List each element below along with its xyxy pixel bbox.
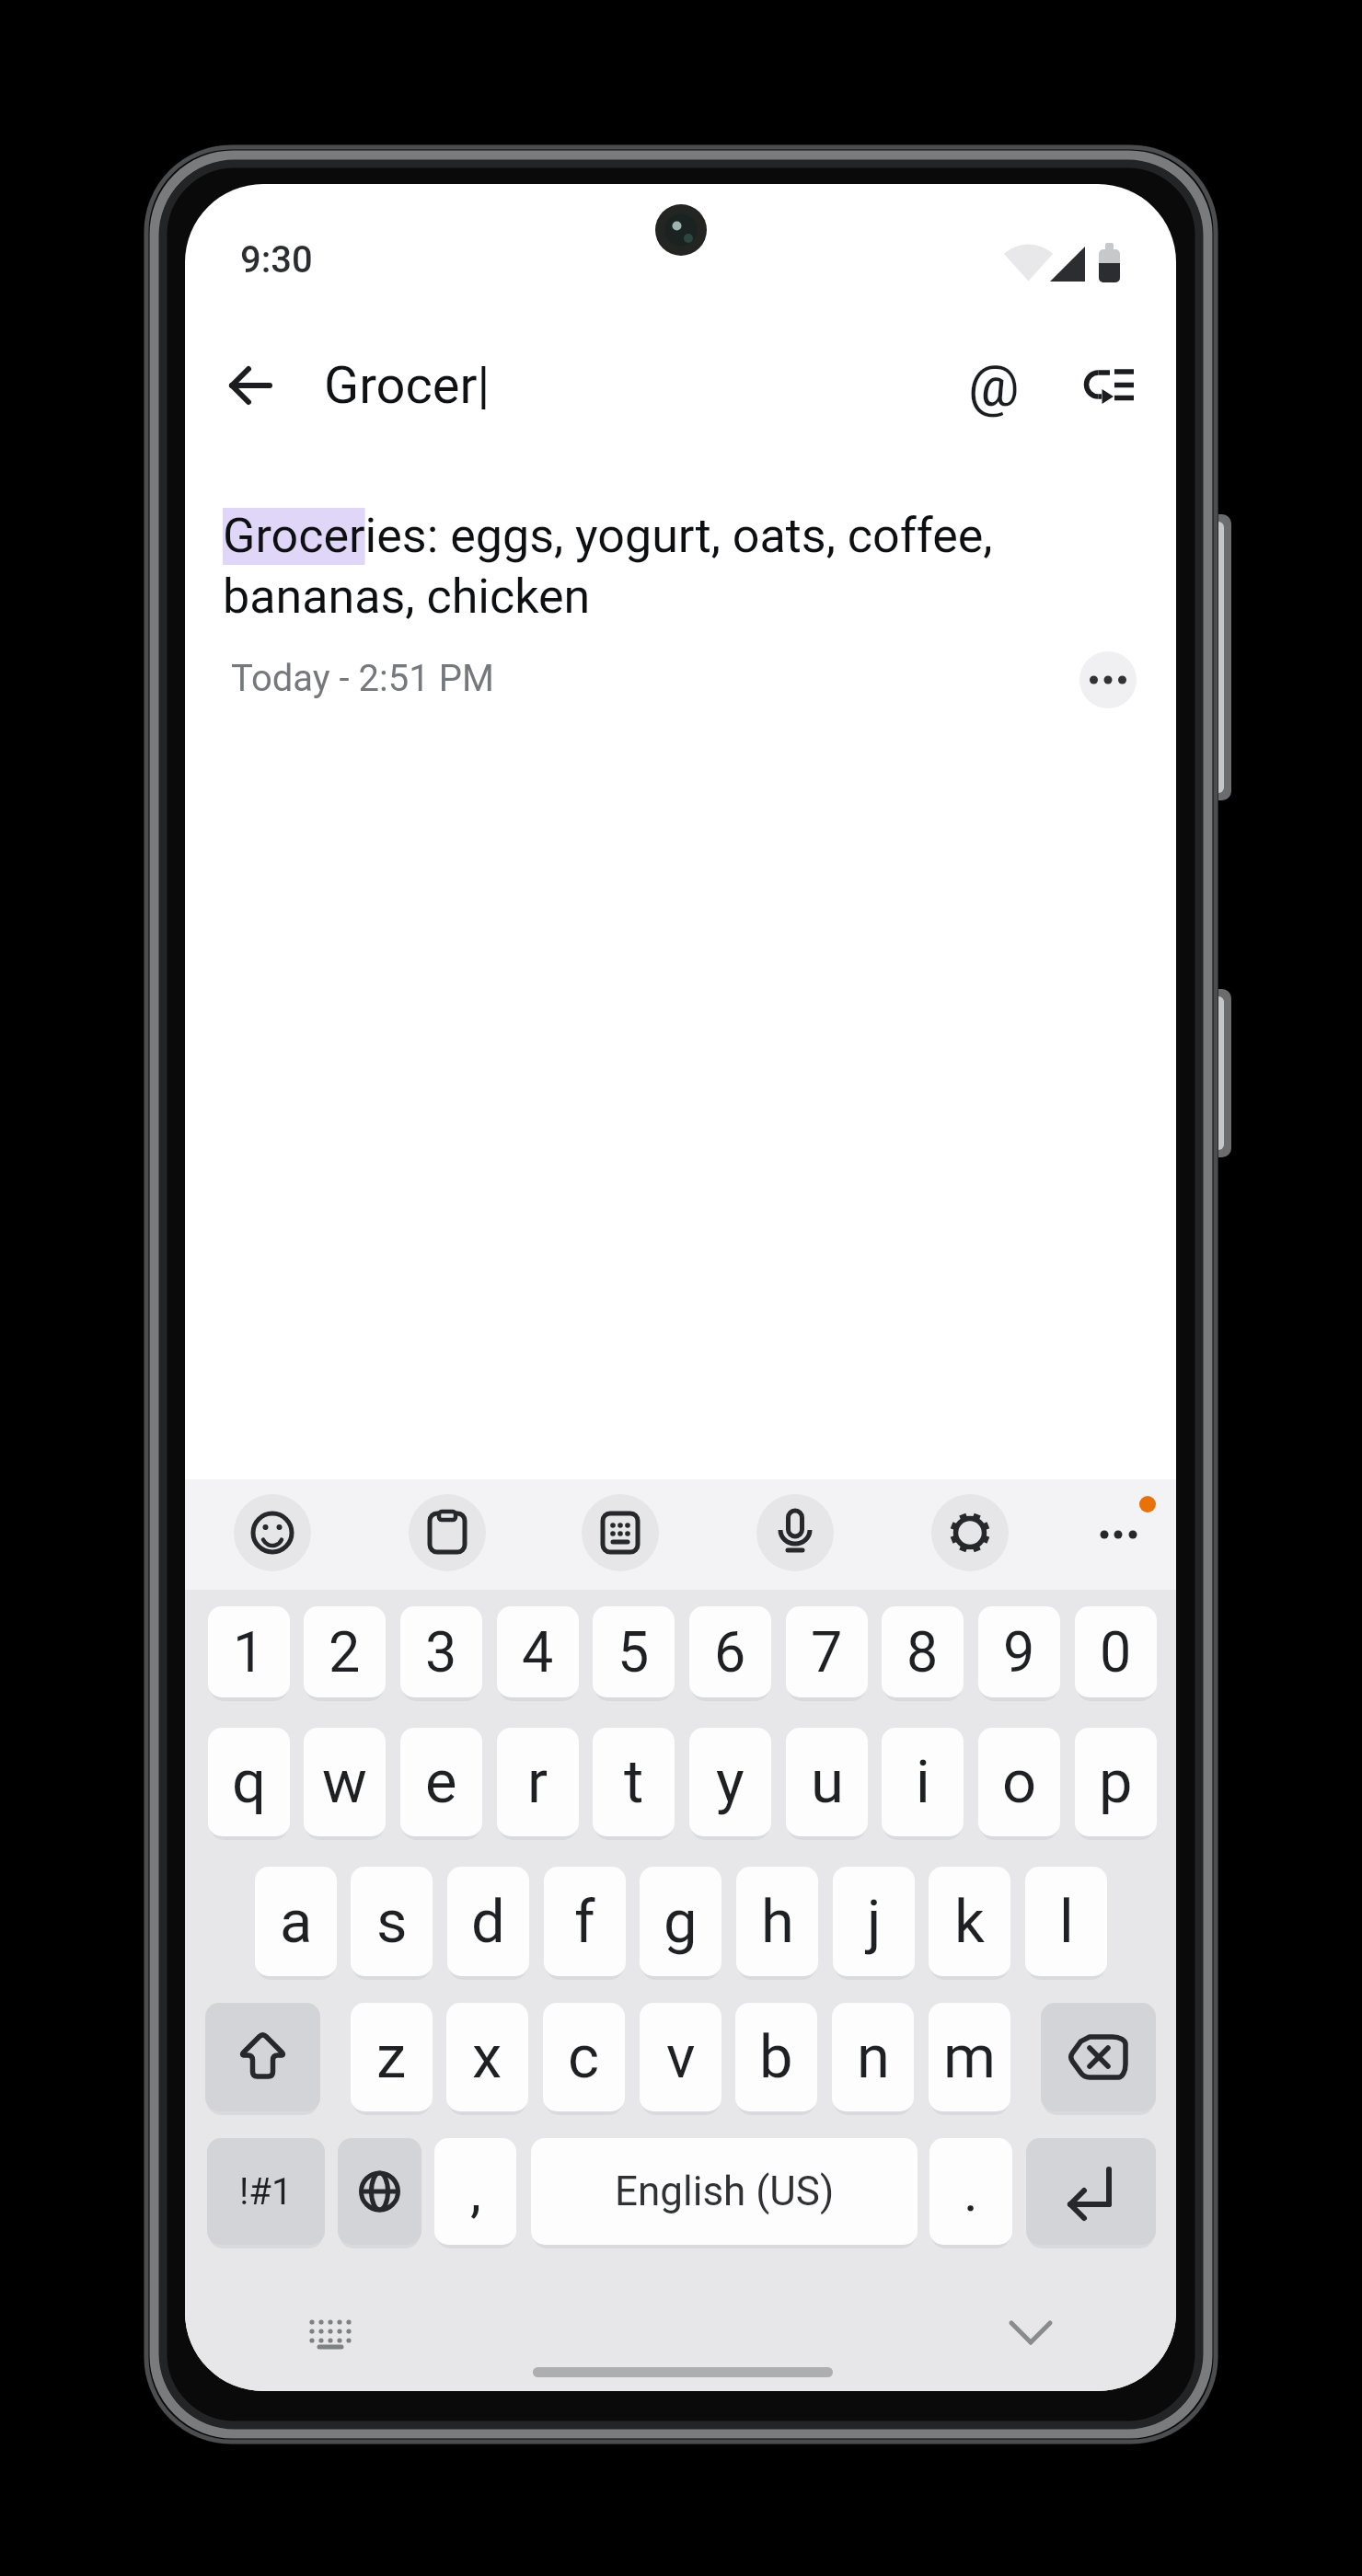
staticText: s [376,1887,408,1957]
button[interactable]: m [929,2003,1010,2111]
button[interactable] [1041,2003,1156,2111]
button[interactable]: 3 [400,1606,482,1697]
button[interactable]: s [351,1867,433,1976]
button[interactable]: 6 [689,1606,771,1697]
button[interactable]: k [929,1867,1010,1976]
staticText: w [322,1747,367,1817]
staticText: c [568,2022,600,2092]
staticText: n [857,2022,890,2092]
staticText: 9 [1003,1619,1035,1685]
button[interactable] [338,2138,421,2245]
staticText: m [943,2022,997,2092]
button[interactable] [409,1494,486,1571]
staticText: 8 [906,1619,939,1685]
staticText: !#1 [239,2170,293,2214]
staticText: k [954,1887,985,1957]
staticText: z [376,2022,407,2092]
button[interactable] [582,1494,659,1571]
staticText: g [664,1887,698,1957]
button[interactable]: n [832,2003,914,2111]
staticText: Today - 2:51 PM [231,657,494,700]
staticText: o [1002,1747,1037,1817]
staticText: 9:30 [240,238,313,282]
button[interactable]: i [882,1728,964,1836]
button[interactable] [1079,651,1137,708]
button[interactable]: 1 [208,1606,290,1697]
button[interactable]: , [434,2138,516,2245]
button[interactable]: y [689,1728,771,1836]
button[interactable]: a [255,1867,337,1976]
staticText: v [666,2022,696,2092]
button[interactable]: q [208,1728,290,1836]
staticText: y [716,1747,744,1817]
button[interactable] [205,2003,320,2111]
staticText: p [1099,1747,1133,1817]
button[interactable]: e [400,1728,482,1836]
staticText: h [761,1887,794,1957]
staticText: , [470,2159,481,2224]
staticText: Groceries: eggs, yogurt, oats, coffee, b… [223,508,993,625]
button[interactable] [1082,1509,1147,1560]
staticText: j [867,1887,882,1957]
staticText: 2 [329,1619,361,1685]
staticText: 5 [618,1619,650,1685]
button[interactable]: z [351,2003,433,2111]
staticText: 6 [714,1619,746,1685]
staticText: r [527,1747,548,1817]
button[interactable]: b [735,2003,817,2111]
button[interactable]: l [1025,1867,1107,1976]
staticText: 0 [1100,1619,1132,1685]
staticText: i [916,1747,930,1817]
staticText: x [472,2022,502,2092]
button[interactable] [931,1494,1009,1571]
button[interactable]: c [543,2003,625,2111]
staticText: 3 [425,1619,457,1685]
button[interactable]: x [446,2003,528,2111]
staticText: u [811,1747,844,1817]
button[interactable]: 8 [882,1606,964,1697]
staticText: d [471,1887,505,1957]
button[interactable] [234,1494,311,1571]
button[interactable]: 2 [304,1606,386,1697]
button[interactable] [533,2367,833,2377]
staticText: 4 [522,1619,554,1685]
button[interactable]: h [736,1867,818,1976]
staticText: Grocer| [324,355,491,416]
button[interactable]: 7 [786,1606,868,1697]
staticText: l [1059,1887,1074,1957]
staticText: @ [968,352,1020,420]
staticText: English (US) [615,2168,835,2215]
staticText: a [280,1887,313,1957]
button[interactable]: 5 [593,1606,675,1697]
button[interactable]: g [640,1867,721,1976]
staticText: . [964,2159,978,2224]
button[interactable]: f [544,1867,626,1976]
button[interactable]: !#1 [207,2138,325,2245]
staticText: q [232,1747,266,1817]
staticText: t [624,1747,644,1817]
button[interactable]: p [1075,1728,1157,1836]
button[interactable]: o [978,1728,1060,1836]
button[interactable]: 4 [497,1606,579,1697]
button[interactable]: 0 [1075,1606,1157,1697]
button[interactable] [1026,2138,1156,2245]
button[interactable] [756,1494,834,1571]
button[interactable]: d [447,1867,529,1976]
button[interactable]: j [833,1867,915,1976]
button[interactable]: English (US) [531,2138,918,2245]
staticText: 7 [811,1619,843,1685]
button[interactable]: r [497,1728,579,1836]
staticText: e [425,1747,457,1817]
staticText: f [574,1887,595,1957]
button[interactable]: . [929,2138,1012,2245]
button[interactable]: w [304,1728,386,1836]
button[interactable]: v [640,2003,721,2111]
button[interactable]: u [786,1728,868,1836]
button[interactable]: t [593,1728,675,1836]
staticText: b [759,2022,793,2092]
button[interactable] [214,349,288,422]
button[interactable]: @ [957,349,1031,422]
button[interactable] [1061,359,1138,412]
staticText: 1 [233,1619,265,1685]
button[interactable]: 9 [978,1606,1060,1697]
